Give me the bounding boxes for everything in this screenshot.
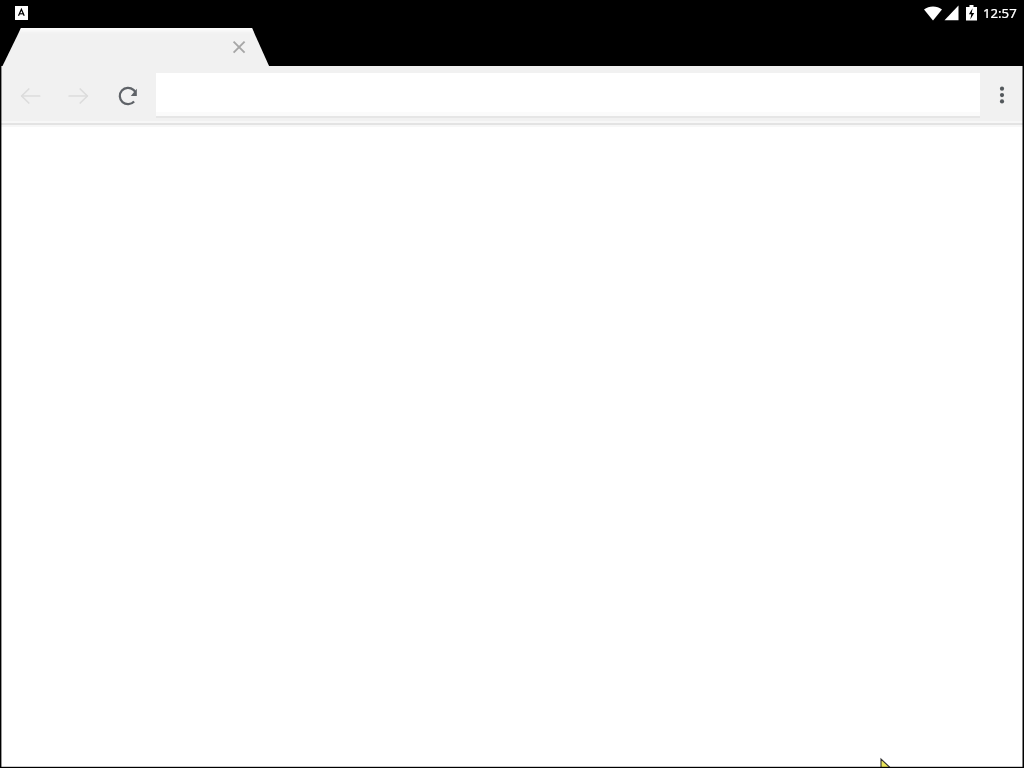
button[interactable]: Reload this page <box>108 76 148 116</box>
button[interactable]: Close tab <box>227 35 251 59</box>
button[interactable]: Customize and control Chrome <box>988 80 1016 108</box>
button[interactable]: Search or type web address <box>156 73 980 118</box>
button[interactable]: Back <box>10 76 50 116</box>
staticText: 12:57 <box>983 4 1017 22</box>
button[interactable]: Browser tab <box>0 28 280 68</box>
button[interactable]: Forward <box>59 76 99 116</box>
